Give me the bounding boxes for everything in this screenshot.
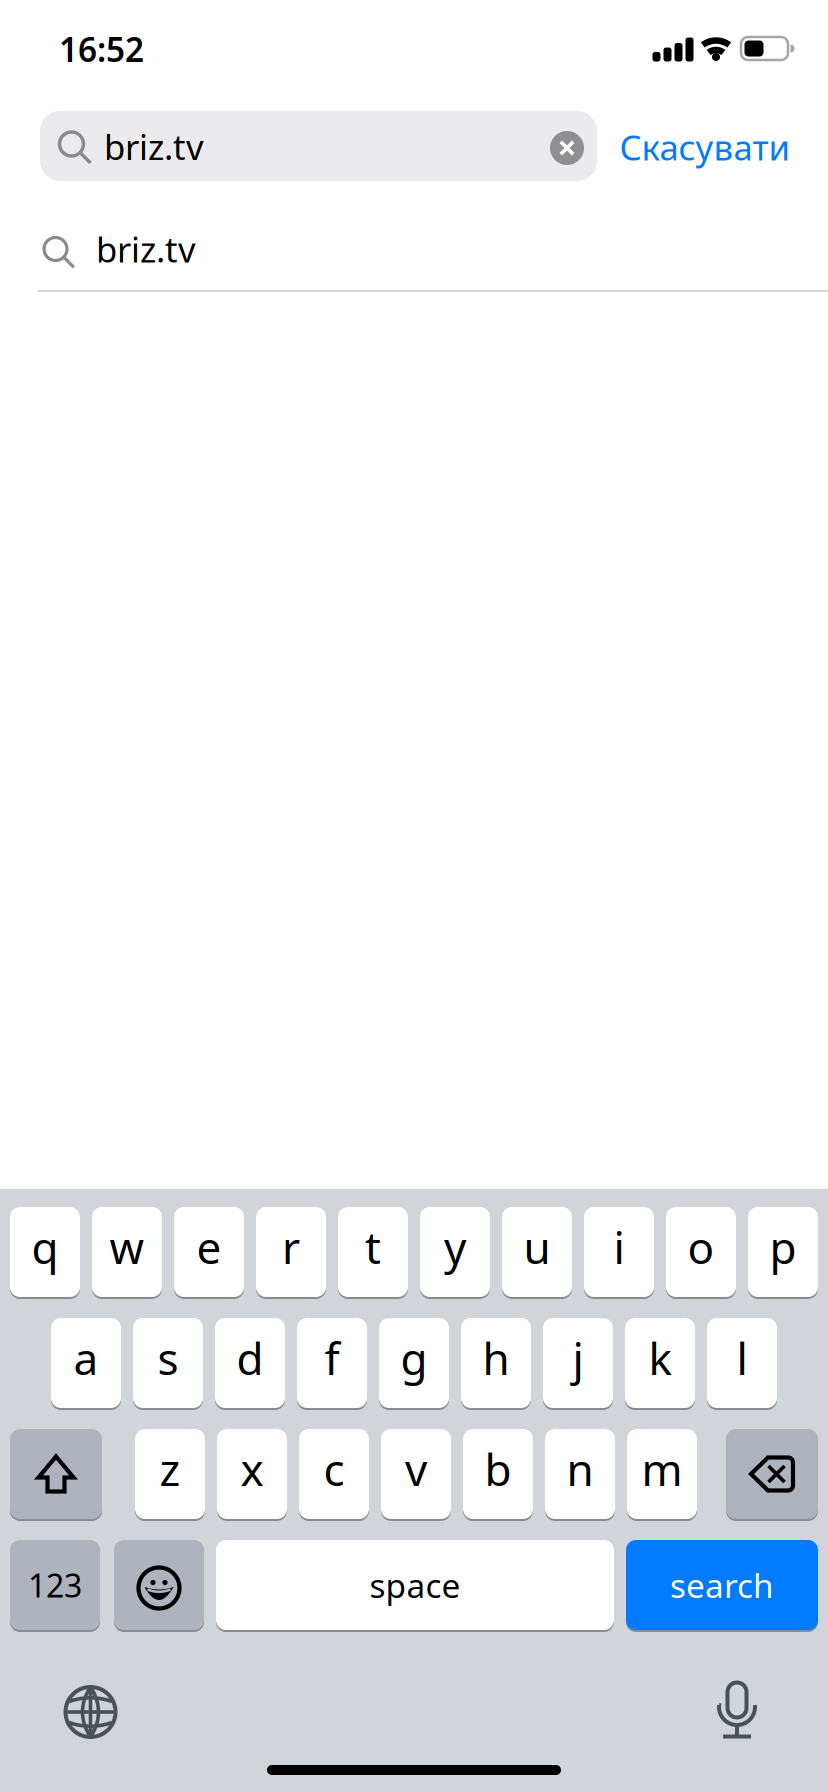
staticText: f xyxy=(324,1329,339,1387)
button[interactable]: s xyxy=(133,1318,203,1408)
staticText: z xyxy=(159,1440,180,1498)
button[interactable]: c xyxy=(299,1429,369,1519)
staticText: v xyxy=(405,1440,427,1498)
button[interactable]: Clear text xyxy=(550,131,584,165)
staticText: d xyxy=(236,1329,263,1387)
staticText: k xyxy=(648,1329,671,1387)
staticText: g xyxy=(400,1329,427,1387)
button[interactable]: r xyxy=(256,1207,326,1297)
staticText: space xyxy=(369,1563,460,1607)
staticText: y xyxy=(444,1218,466,1276)
button[interactable]: Shift xyxy=(10,1429,102,1519)
button[interactable]: Скасувати xyxy=(619,124,790,170)
button[interactable]: w xyxy=(92,1207,162,1297)
staticText: j xyxy=(572,1329,583,1387)
staticText: search xyxy=(670,1563,774,1607)
staticText: m xyxy=(641,1440,682,1498)
staticText: u xyxy=(523,1218,550,1276)
button[interactable]: b xyxy=(463,1429,533,1519)
button[interactable]: o xyxy=(666,1207,736,1297)
button[interactable]: v xyxy=(381,1429,451,1519)
button[interactable]: k xyxy=(625,1318,695,1408)
button[interactable]: l xyxy=(707,1318,777,1408)
staticText: i xyxy=(613,1218,624,1276)
button[interactable]: n xyxy=(545,1429,615,1519)
staticText: e xyxy=(196,1218,221,1276)
button[interactable]: p xyxy=(748,1207,818,1297)
button[interactable]: f xyxy=(297,1318,367,1408)
staticText: s xyxy=(157,1329,178,1387)
staticText: l xyxy=(736,1329,747,1387)
button[interactable]: j xyxy=(543,1318,613,1408)
button[interactable]: search xyxy=(626,1540,818,1630)
button[interactable]: z xyxy=(135,1429,205,1519)
staticText: 16:52 xyxy=(59,27,144,71)
staticText: n xyxy=(566,1440,593,1498)
staticText: a xyxy=(73,1329,98,1387)
staticText: b xyxy=(484,1440,511,1498)
button[interactable]: 123 xyxy=(10,1540,100,1630)
button[interactable]: a xyxy=(51,1318,121,1408)
button[interactable]: Delete xyxy=(726,1429,818,1519)
staticText: Скасувати xyxy=(619,124,790,170)
staticText: p xyxy=(769,1218,796,1276)
button[interactable]: space xyxy=(216,1540,614,1630)
staticText: t xyxy=(365,1218,381,1276)
button[interactable]: x xyxy=(217,1429,287,1519)
button[interactable]: Emoji xyxy=(114,1540,204,1630)
button[interactable]: g xyxy=(379,1318,449,1408)
button[interactable]: q xyxy=(10,1207,80,1297)
staticText: q xyxy=(31,1218,58,1276)
staticText: h xyxy=(482,1329,509,1387)
staticText: c xyxy=(323,1440,344,1498)
staticText: w xyxy=(109,1218,144,1276)
staticText: briz.tv xyxy=(96,226,196,272)
button[interactable]: i xyxy=(584,1207,654,1297)
staticText: o xyxy=(687,1218,714,1276)
button[interactable]: h xyxy=(461,1318,531,1408)
button[interactable]: y xyxy=(420,1207,490,1297)
button[interactable]: m xyxy=(627,1429,697,1519)
button[interactable]: u xyxy=(502,1207,572,1297)
button[interactable]: Search xyxy=(40,111,597,181)
button[interactable]: briz.tv xyxy=(0,194,828,291)
staticText: x xyxy=(240,1440,263,1498)
button[interactable]: t xyxy=(338,1207,408,1297)
button[interactable]: Next keyboard xyxy=(63,1685,117,1739)
staticText: briz.tv xyxy=(104,123,204,169)
staticText: r xyxy=(282,1218,300,1276)
staticText: 123 xyxy=(28,1564,82,1606)
button[interactable]: e xyxy=(174,1207,244,1297)
button[interactable]: Dictate xyxy=(709,1681,765,1739)
button[interactable]: d xyxy=(215,1318,285,1408)
